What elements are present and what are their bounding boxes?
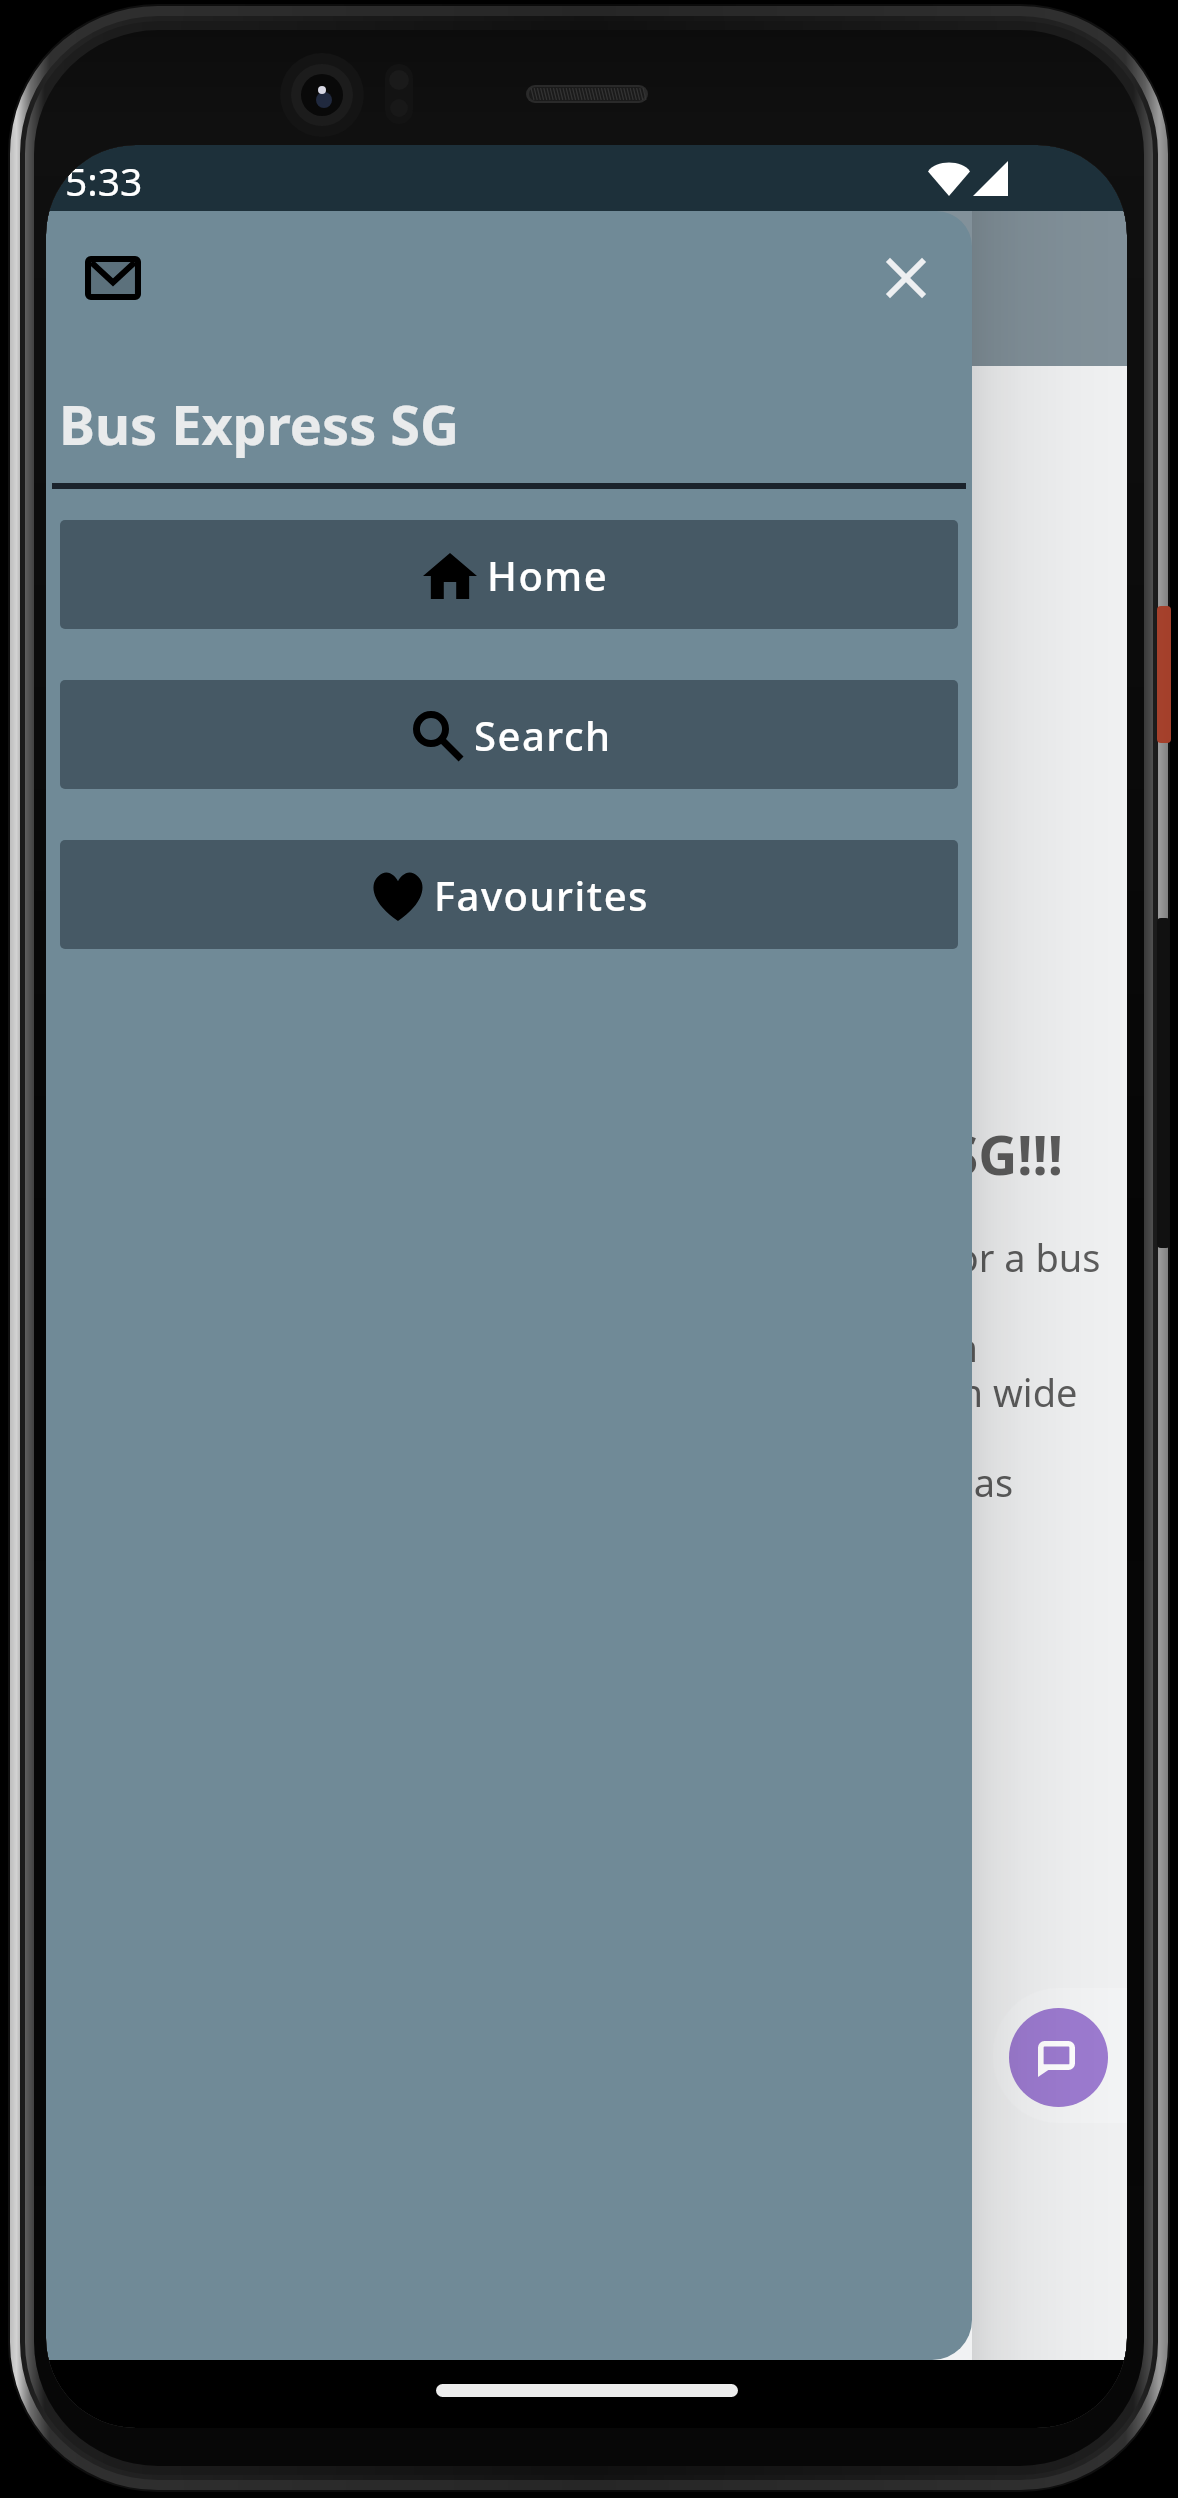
staticText: Bus Express SG	[59, 387, 460, 461]
staticText: Home	[487, 548, 609, 602]
button[interactable]: Chat	[1009, 2008, 1108, 2107]
staticText: 5:33	[65, 154, 143, 207]
button[interactable]: Close	[866, 238, 946, 318]
staticText: opening many different apps and then	[290, 1321, 978, 1373]
staticText: find when the next bus comes? Fret not, …	[252, 1456, 1014, 1508]
staticText: scrolling back and forth, checking them …	[280, 1366, 1078, 1418]
button[interactable]: Home	[60, 520, 958, 629]
staticText: Search	[474, 708, 612, 762]
button[interactable]: Mail	[73, 244, 153, 312]
button[interactable]: Favourites	[60, 840, 958, 949]
button[interactable]: Search	[60, 680, 958, 789]
staticText: Welcome to Bus Express SG!!!	[286, 1117, 1064, 1191]
staticText: Favourites	[434, 868, 650, 922]
staticText: Tired of standing at a bus stop waiting …	[249, 1231, 1101, 1283]
